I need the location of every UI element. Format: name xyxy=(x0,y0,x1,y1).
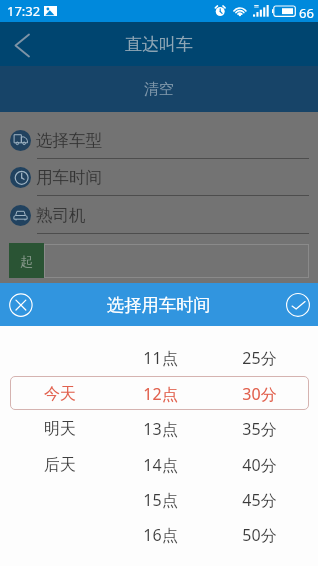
button[interactable]: 16点 xyxy=(110,517,210,552)
staticText: 66 xyxy=(299,4,314,22)
button[interactable]: 50分 xyxy=(209,517,309,552)
staticText: 35分 xyxy=(242,418,277,440)
button[interactable]: Cancel xyxy=(5,289,37,321)
staticText: 15点 xyxy=(143,489,178,511)
button[interactable]: 30分 xyxy=(209,376,309,411)
button[interactable]: 11点 xyxy=(110,340,210,375)
button[interactable]: 45分 xyxy=(209,482,309,517)
button[interactable]: Back xyxy=(4,22,44,66)
button[interactable]: 今天 xyxy=(10,376,110,411)
staticText: 12点 xyxy=(143,383,178,405)
staticText: 清空 xyxy=(144,80,174,99)
staticText: 17:32 xyxy=(7,2,41,20)
staticText: 40分 xyxy=(242,454,277,476)
button[interactable]: 选择车型 xyxy=(0,121,318,159)
staticText: 直达叫车 xyxy=(125,34,193,55)
button[interactable]: 明天 xyxy=(10,411,110,446)
staticText: 熟司机 xyxy=(36,205,86,226)
staticText: 11点 xyxy=(143,347,178,369)
staticText: 明天 xyxy=(44,419,76,439)
staticText: 30分 xyxy=(242,383,277,405)
button[interactable]: 14点 xyxy=(110,447,210,482)
button[interactable]: 15点 xyxy=(110,482,210,517)
button[interactable]: 25分 xyxy=(209,340,309,375)
button[interactable]: 40分 xyxy=(209,447,309,482)
button[interactable]: 熟司机 xyxy=(0,196,318,234)
button[interactable]: Confirm xyxy=(282,289,314,321)
button[interactable]: 用车时间 xyxy=(0,158,318,196)
staticText: 50分 xyxy=(242,524,277,546)
button[interactable]: 13点 xyxy=(110,411,210,446)
staticText: 今天 xyxy=(44,384,76,404)
button[interactable] xyxy=(44,244,309,278)
staticText: 14点 xyxy=(143,454,178,476)
staticText: 45分 xyxy=(242,489,277,511)
staticText: 用车时间 xyxy=(36,167,102,188)
staticText: 25分 xyxy=(242,347,277,369)
staticText: 起 xyxy=(20,253,33,269)
staticText: 后天 xyxy=(44,455,76,475)
button[interactable]: 后天 xyxy=(10,447,110,482)
staticText: 13点 xyxy=(143,418,178,440)
button[interactable]: 35分 xyxy=(209,411,309,446)
staticText: 选择车型 xyxy=(36,130,102,151)
button[interactable]: 12点 xyxy=(110,376,210,411)
staticText: 16点 xyxy=(143,524,178,546)
staticText: 选择用车时间 xyxy=(107,294,211,316)
button[interactable]: 清空 xyxy=(0,66,318,112)
